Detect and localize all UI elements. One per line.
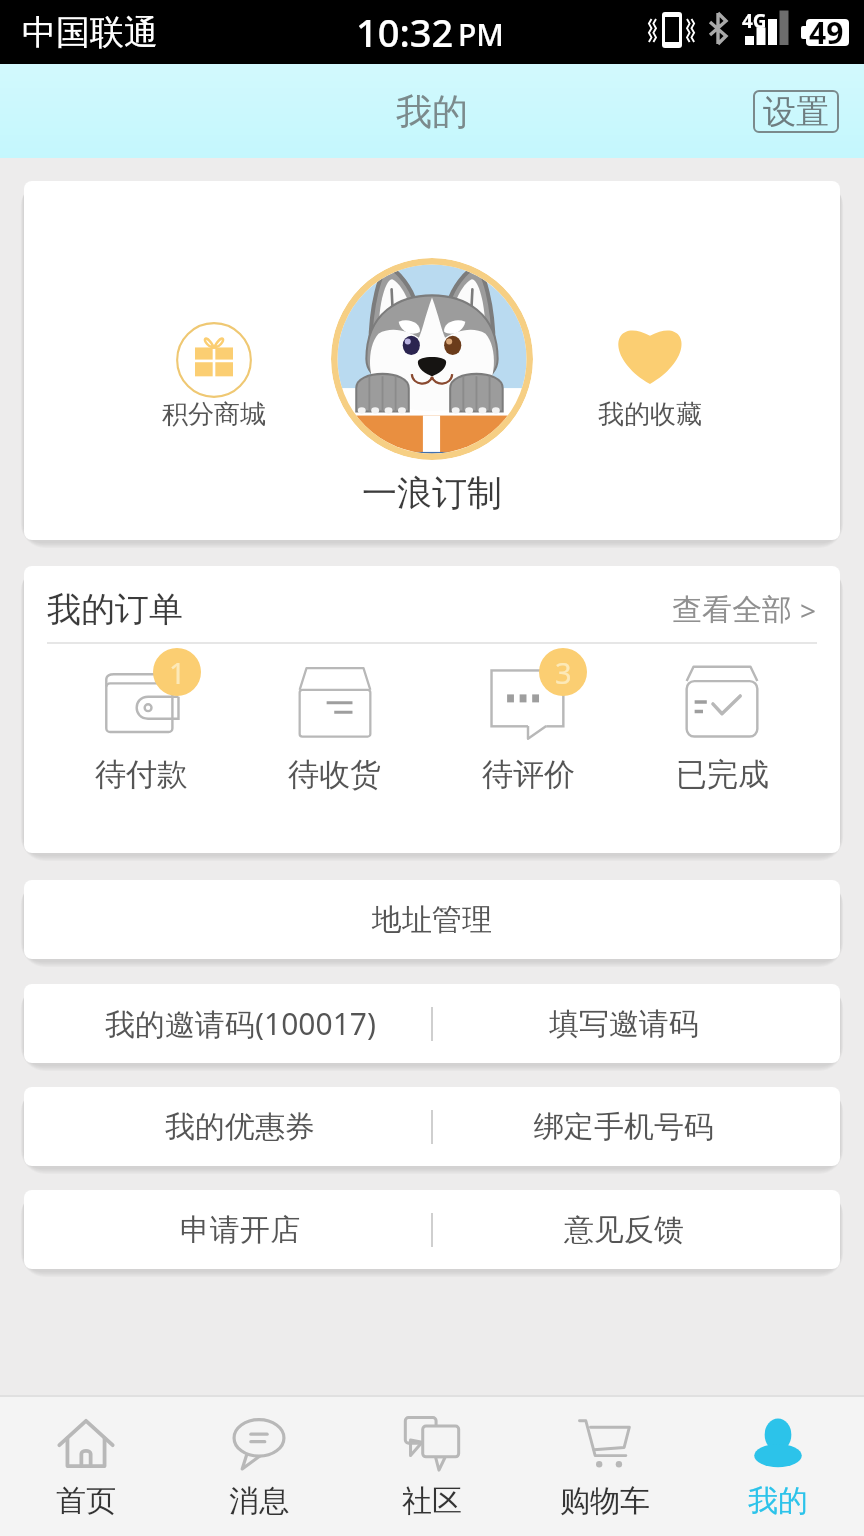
button[interactable]: Profile: [691, 1397, 864, 1536]
button[interactable]: 待收货: [238, 658, 431, 794]
staticText: 4G: [742, 8, 767, 34]
staticText: PM: [458, 14, 504, 55]
staticText: 我的邀请码(100017): [105, 1003, 376, 1044]
staticText: 10:32: [356, 6, 454, 58]
button[interactable]: 1: [45, 658, 238, 794]
staticText: 购物车: [560, 1482, 650, 1520]
staticText: 绑定手机号码: [534, 1108, 714, 1146]
button[interactable]: 积分商城: [162, 322, 266, 431]
staticText: 我的: [748, 1482, 808, 1520]
staticText: 设置: [763, 91, 829, 133]
button[interactable]: Messages: [172, 1397, 345, 1536]
button[interactable]: 我的邀请码(100017): [24, 984, 432, 1063]
button[interactable]: 填写邀请码: [432, 984, 840, 1063]
other: Profile: [749, 1415, 807, 1473]
staticText: 地址管理: [372, 901, 492, 939]
staticText: 49: [809, 12, 844, 53]
button[interactable]: 我的收藏: [598, 322, 702, 431]
button[interactable]: Cart: [518, 1397, 691, 1536]
staticText: 社区: [402, 1482, 462, 1520]
button[interactable]: 我的优惠券: [24, 1087, 432, 1166]
staticText: 首页: [56, 1482, 116, 1520]
staticText: 已完成: [676, 755, 769, 794]
staticText: 待评价: [482, 755, 575, 794]
other: Messages: [230, 1415, 288, 1473]
staticText: 申请开店: [180, 1211, 300, 1249]
button[interactable]: Profile avatar: [331, 258, 533, 460]
button[interactable]: 3: [431, 658, 625, 794]
button[interactable]: 绑定手机号码: [432, 1087, 840, 1166]
staticText: 我的优惠券: [165, 1108, 315, 1146]
staticText: 3: [555, 653, 572, 692]
button[interactable]: Community: [345, 1397, 518, 1536]
button[interactable]: 查看全部: [672, 591, 817, 629]
staticText: 一浪订制: [362, 471, 502, 515]
staticText: 意见反馈: [564, 1211, 684, 1249]
staticText: 待付款: [95, 755, 188, 794]
staticText: 1: [169, 653, 186, 692]
staticText: 积分商城: [162, 398, 266, 431]
other: Community: [403, 1415, 461, 1473]
button[interactable]: 地址管理: [24, 880, 840, 959]
staticText: 待收货: [288, 755, 381, 794]
staticText: 填写邀请码: [549, 1005, 699, 1043]
staticText: >: [800, 591, 817, 629]
staticText: 中国联通: [22, 11, 158, 54]
button[interactable]: 意见反馈: [432, 1190, 840, 1269]
button[interactable]: Home: [0, 1397, 172, 1536]
staticText: 消息: [229, 1482, 289, 1520]
button[interactable]: 已完成: [625, 658, 819, 794]
button[interactable]: 申请开店: [24, 1190, 432, 1269]
other: Home: [57, 1415, 115, 1473]
other: Cart: [576, 1415, 634, 1473]
staticText: 我的订单: [47, 588, 183, 631]
button[interactable]: 设置: [753, 90, 839, 133]
staticText: 查看全部: [672, 591, 792, 629]
staticText: 我的收藏: [598, 398, 702, 431]
button[interactable]: 一浪订制: [352, 465, 512, 521]
staticText: 我的: [396, 89, 468, 134]
